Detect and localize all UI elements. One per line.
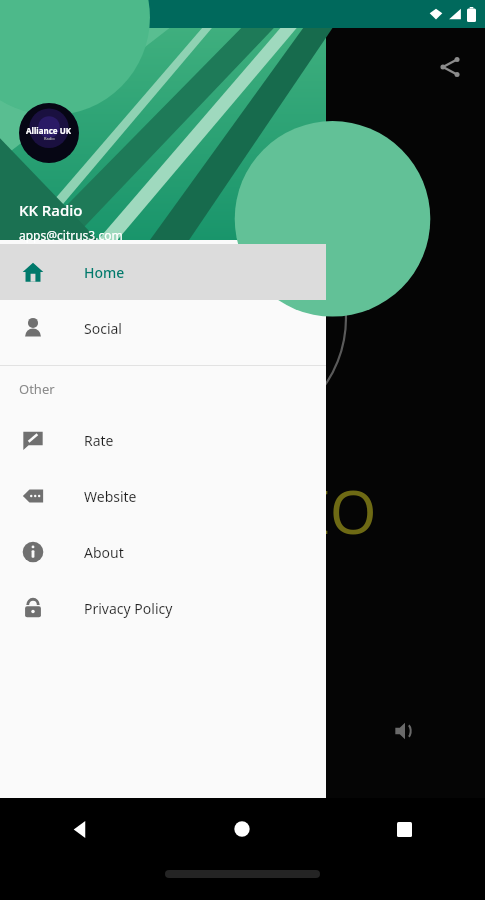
button[interactable]: About — [0, 524, 326, 580]
staticText: KK Radio — [19, 200, 83, 220]
button[interactable]: Home — [161, 798, 323, 860]
staticText: Privacy Policy — [84, 599, 173, 618]
staticText: Other — [19, 380, 55, 398]
staticText: Alliance UK — [26, 125, 72, 136]
button[interactable]: Social — [0, 300, 326, 356]
button[interactable]: Privacy Policy — [0, 580, 326, 636]
staticText: Rate — [84, 431, 114, 450]
button[interactable]: Home — [0, 244, 326, 300]
button[interactable]: Rate — [0, 412, 326, 468]
staticText: RADIO — [190, 470, 377, 552]
button[interactable]: Profile picture — [19, 103, 79, 163]
staticText: About — [84, 543, 124, 562]
button[interactable]: Volume — [388, 714, 422, 748]
button[interactable]: Back — [0, 798, 161, 860]
staticText: Home — [84, 263, 125, 282]
staticText: Social — [84, 319, 122, 338]
button[interactable]: Recent apps — [323, 798, 485, 860]
staticText: Website — [84, 487, 137, 506]
staticText: apps@citrus3.com — [19, 227, 123, 243]
button[interactable]: Website — [0, 468, 326, 524]
button[interactable]: Share — [432, 49, 468, 85]
staticText: Radio — [44, 136, 55, 141]
